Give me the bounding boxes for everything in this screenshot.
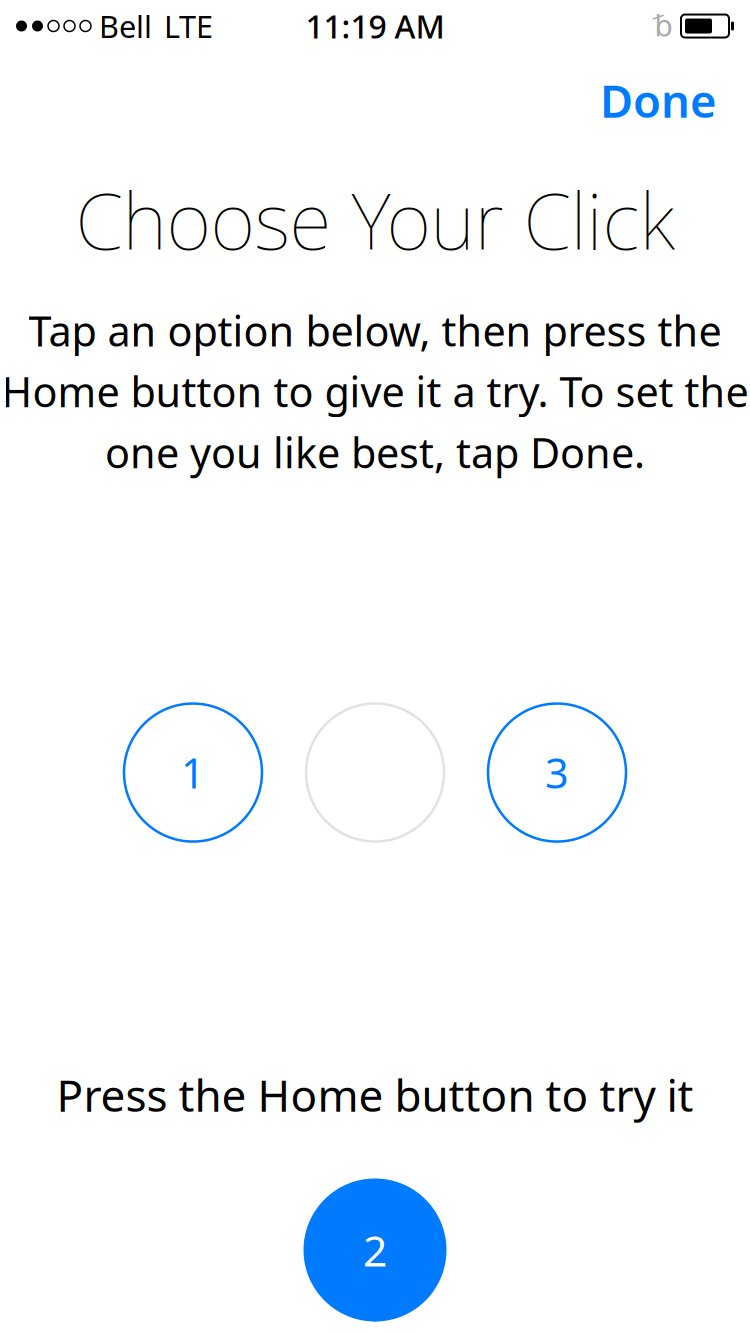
staticText: Home button to give it a try. To set the <box>1 364 748 419</box>
staticText: LTE <box>164 6 213 46</box>
button[interactable]: Click option 2 <box>306 704 444 842</box>
staticText: Choose Your Click <box>75 168 674 271</box>
staticText: 3 <box>545 745 569 800</box>
staticText: 11:19 AM <box>305 5 444 47</box>
staticText: Tap an option below, then press the <box>28 303 721 358</box>
staticText: Press the Home button to try it <box>56 1066 693 1124</box>
staticText: one you like best, tap Done. <box>105 425 645 480</box>
button[interactable]: Done <box>584 60 733 140</box>
staticText: 2 <box>363 1222 387 1278</box>
staticText: Bell <box>99 6 152 46</box>
button[interactable]: Click option 3 <box>488 704 626 842</box>
button[interactable]: Click option 1 <box>124 704 262 842</box>
staticText: 1 <box>181 745 205 800</box>
staticText: Done <box>600 70 717 130</box>
staticText: ␢ <box>654 9 673 43</box>
